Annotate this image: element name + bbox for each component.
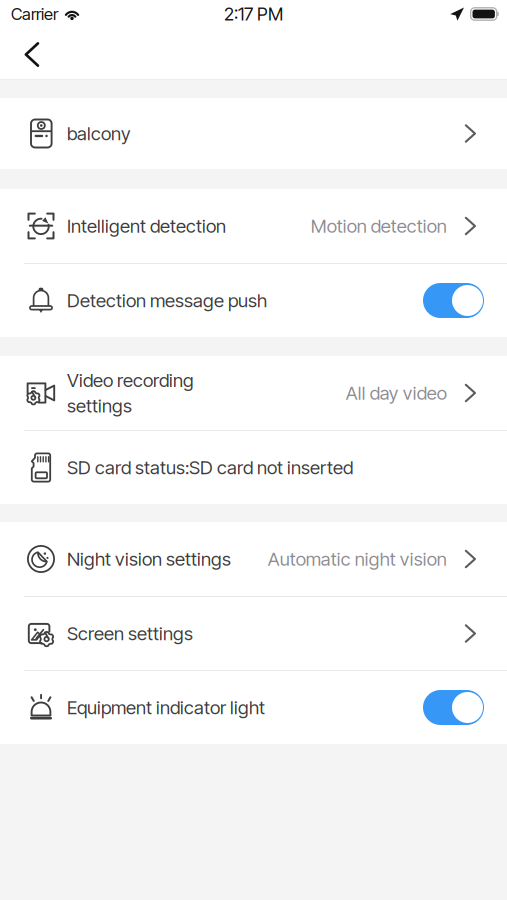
button[interactable]: Equipment indicator light <box>0 671 507 744</box>
button[interactable]: Night vision settings <box>0 522 507 596</box>
staticText: Equipment indicator light <box>67 696 265 719</box>
staticText: Detection message push <box>67 289 267 312</box>
staticText: Intelligent detection <box>67 215 226 237</box>
staticText: Video recording <box>67 369 194 391</box>
button[interactable]: Back <box>10 30 54 79</box>
button[interactable]: balcony <box>0 98 507 169</box>
staticText: Automatic night vision <box>268 548 447 570</box>
staticText: Carrier <box>11 4 58 24</box>
staticText: SD card status:SD card not inserted <box>67 456 353 479</box>
staticText: balcony <box>67 122 131 145</box>
staticText: 2:17 PM <box>224 3 283 25</box>
button[interactable]: Screen settings <box>0 597 507 670</box>
button[interactable]: Detection message push <box>0 264 507 337</box>
button[interactable]: Intelligent detection <box>0 189 507 263</box>
staticText: Motion detection <box>311 215 447 237</box>
staticText: Night vision settings <box>67 548 231 570</box>
button[interactable]: SD card status:SD card not inserted <box>0 431 507 504</box>
staticText: Screen settings <box>67 622 193 645</box>
staticText: All day video <box>346 382 447 404</box>
staticText: settings <box>67 394 132 417</box>
button[interactable]: Video recording <box>0 356 507 430</box>
